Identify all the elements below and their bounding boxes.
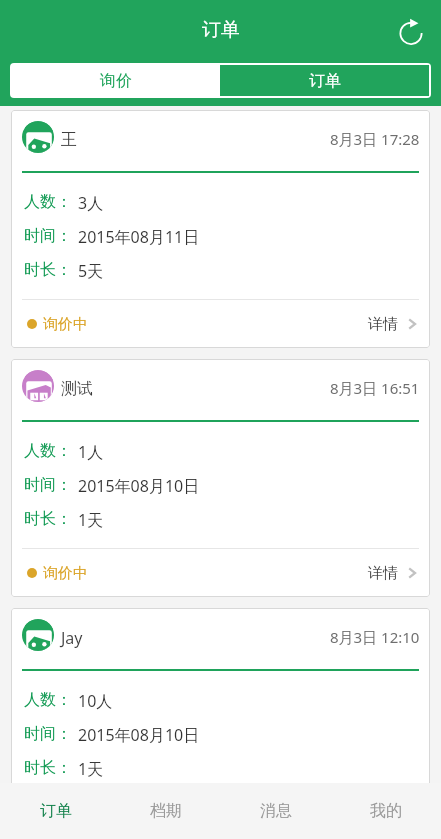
staticText: 1人 (78, 441, 104, 463)
staticText: 订单 (309, 71, 341, 91)
staticText: 王 (61, 130, 77, 150)
staticText: 询价 (100, 71, 132, 91)
staticText: 消息 (260, 801, 292, 821)
staticText: 1天 (78, 758, 104, 780)
button[interactable]: 我的 (331, 783, 441, 839)
button[interactable]: Jay (11, 608, 430, 783)
staticText: 3人 (78, 192, 104, 214)
button[interactable]: 订单 (0, 783, 111, 839)
staticText: 时间： (24, 226, 72, 246)
staticText: 询价中 (43, 564, 88, 583)
staticText: 2015年08月11日 (78, 226, 200, 248)
staticText: 时间： (24, 724, 72, 744)
staticText: 时长： (24, 509, 72, 529)
staticText: 时间： (24, 475, 72, 495)
staticText: 时长： (24, 758, 72, 778)
staticText: Jay (61, 627, 83, 649)
staticText: 时长： (24, 260, 72, 280)
button[interactable]: 消息 (221, 783, 331, 839)
button[interactable]: 订单 (220, 65, 429, 96)
staticText: 详情 (368, 315, 398, 334)
staticText: 人数： (24, 690, 72, 710)
staticText: 2015年08月10日 (78, 724, 200, 746)
staticText: 5天 (78, 260, 104, 282)
staticText: 测试 (61, 379, 93, 399)
staticText: 详情 (368, 564, 398, 583)
button[interactable]: 档期 (111, 783, 221, 839)
staticText: 8月3日 16:51 (330, 378, 420, 398)
staticText: 人数： (24, 441, 72, 461)
button[interactable]: Refresh (392, 13, 430, 51)
staticText: 档期 (150, 801, 182, 821)
button[interactable]: 王 (11, 110, 430, 348)
staticText: 2015年08月10日 (78, 475, 200, 497)
staticText: 人数： (24, 192, 72, 212)
button[interactable]: 询价 (12, 65, 220, 96)
staticText: 10人 (78, 690, 113, 712)
button[interactable]: 测试 (11, 359, 430, 597)
staticText: 询价中 (43, 315, 88, 334)
staticText: 1天 (78, 509, 104, 531)
staticText: 8月3日 17:28 (330, 129, 420, 149)
staticText: 8月3日 12:10 (330, 627, 420, 647)
staticText: 我的 (370, 801, 402, 821)
staticText: 订单 (202, 18, 240, 42)
staticText: 订单 (40, 801, 72, 821)
